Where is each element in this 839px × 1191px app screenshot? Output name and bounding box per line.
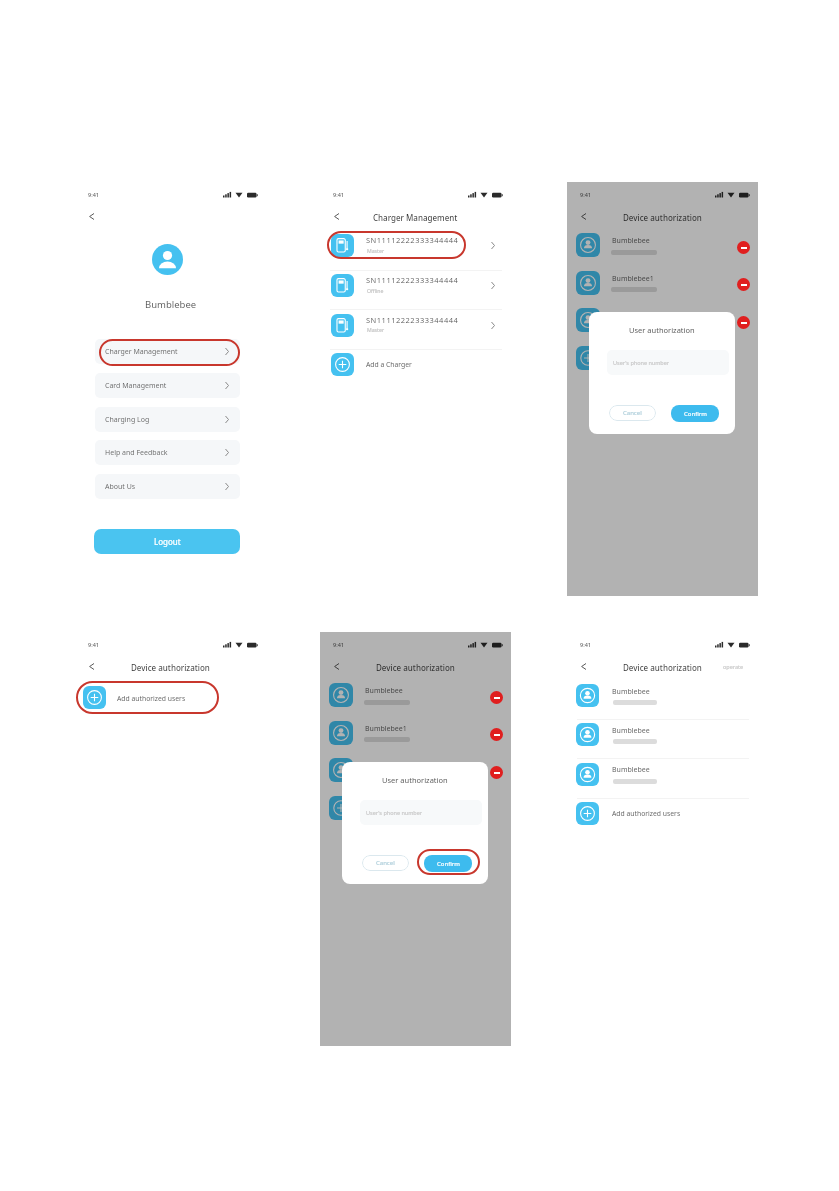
staticText: SN11112222333344444 (366, 235, 459, 245)
button[interactable]: Logout (94, 529, 240, 554)
button[interactable] (737, 278, 750, 291)
staticText: User's phone number (613, 359, 670, 366)
button[interactable]: Charging Log (95, 407, 240, 432)
button[interactable] (567, 684, 758, 714)
staticText: Charger Management (105, 347, 178, 357)
staticText: Bumblebee1 (612, 274, 654, 284)
staticText: Bumblebee2 (612, 311, 654, 321)
button[interactable] (737, 241, 750, 254)
staticText: 9:41 (333, 641, 344, 648)
button[interactable] (578, 661, 589, 672)
staticText: Device authorization (623, 212, 702, 223)
staticText: Master (367, 247, 385, 254)
staticText: Cancel (623, 409, 642, 417)
button[interactable]: About Us (95, 474, 240, 499)
staticText: Bumblebee (145, 298, 197, 311)
staticText: 9:41 (580, 641, 591, 648)
staticText: Bumblebee (612, 726, 650, 736)
button[interactable]: Cancel (362, 855, 409, 871)
button[interactable] (320, 234, 511, 264)
button[interactable] (320, 274, 511, 304)
button[interactable]: Charger Management (95, 339, 240, 364)
button[interactable] (331, 661, 342, 672)
staticText: Device authorization (623, 662, 702, 673)
staticText: Add authorized users (612, 809, 681, 818)
staticText: 9:41 (333, 191, 344, 198)
staticText: Add authorized users (117, 694, 186, 703)
button[interactable] (75, 686, 266, 716)
staticText: User authorization (629, 325, 695, 335)
button[interactable] (320, 314, 511, 344)
staticText: Cancel (376, 859, 395, 867)
staticText: operate (723, 663, 744, 670)
button[interactable] (490, 766, 503, 779)
button[interactable]: Confirm (671, 405, 719, 422)
staticText: Logout (154, 536, 181, 547)
staticText: 9:41 (88, 191, 99, 198)
button[interactable] (320, 353, 511, 383)
button[interactable] (578, 211, 589, 222)
staticText: Bumblebee (612, 687, 650, 697)
button[interactable] (567, 802, 758, 832)
button[interactable] (567, 723, 758, 753)
staticText: Device authorization (376, 662, 455, 673)
staticText: Bumblebee1 (365, 724, 407, 734)
staticText: SN11112222333344444 (366, 275, 459, 285)
staticText: Device authorization (131, 662, 210, 673)
staticText: Charger Management (373, 212, 458, 223)
button[interactable]: Help and Feedback (95, 440, 240, 465)
button[interactable]: Confirm (424, 855, 472, 872)
staticText: SN11112222333344444 (366, 315, 459, 325)
staticText: Bumblebee2 (365, 761, 407, 771)
button[interactable] (86, 211, 97, 222)
button[interactable] (86, 661, 97, 672)
staticText: Bumblebee (612, 236, 650, 246)
button[interactable] (567, 763, 758, 793)
button[interactable]: Cancel (609, 405, 656, 421)
staticText: Confirm (437, 860, 460, 868)
staticText: 9:41 (580, 191, 591, 198)
staticText: Bumblebee (365, 686, 403, 696)
button[interactable] (331, 211, 342, 222)
staticText: 9:41 (88, 641, 99, 648)
staticText: Help and Feedback (105, 448, 168, 458)
button[interactable] (490, 728, 503, 741)
staticText: Add a Charger (366, 360, 412, 369)
staticText: Offline (367, 287, 384, 294)
staticText: About Us (105, 482, 136, 492)
staticText: User authorization (382, 775, 448, 785)
staticText: Charging Log (105, 415, 150, 425)
staticText: Master (367, 326, 385, 333)
staticText: Confirm (684, 410, 707, 418)
button[interactable] (737, 316, 750, 329)
staticText: Card Management (105, 381, 167, 391)
button[interactable]: Card Management (95, 373, 240, 398)
staticText: Bumblebee (612, 765, 650, 775)
button[interactable] (490, 691, 503, 704)
staticText: User's phone number (366, 809, 423, 816)
